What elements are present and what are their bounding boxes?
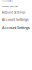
staticText: Account Settings [2,25,30,30]
staticText: Account Settings [2,17,29,22]
staticText: Account Settings [2,10,25,14]
staticText: Account Settings [2,0,13,2]
staticText: Account Settings [2,5,18,7]
